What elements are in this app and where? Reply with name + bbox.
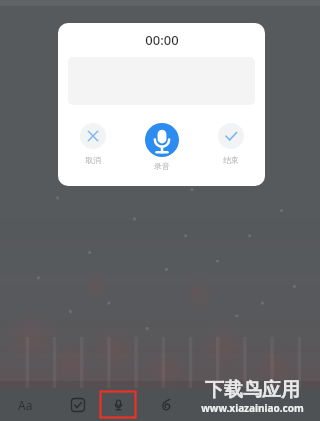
staticText: www.xiazainiao.com: [201, 401, 304, 415]
staticText: Aa: [18, 397, 33, 413]
button[interactable]: 结束: [196, 123, 265, 165]
staticText: 00:00: [145, 31, 179, 49]
button[interactable]: 录音: [127, 123, 196, 171]
staticText: 取消: [85, 155, 101, 165]
button[interactable]: Record voice: [100, 391, 136, 418]
other: 取消: [80, 123, 106, 149]
other: 录音: [145, 123, 179, 157]
staticText: 录音: [154, 161, 170, 171]
button[interactable]: Attach: [144, 388, 188, 421]
staticText: 结束: [223, 155, 239, 165]
button[interactable]: Checklist: [56, 388, 100, 421]
button[interactable]: Aa: [18, 388, 320, 421]
button[interactable]: 取消: [58, 123, 127, 165]
staticText: 下载鸟应用: [205, 378, 300, 402]
other: 结束: [218, 123, 244, 149]
